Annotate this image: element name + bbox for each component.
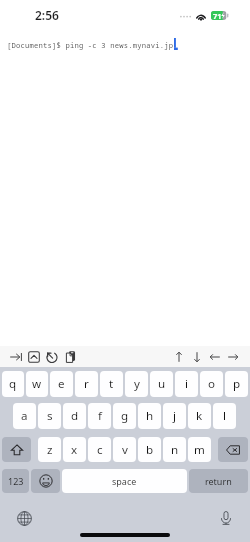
staticText: return: [205, 475, 232, 487]
button[interactable]: f: [88, 403, 111, 429]
staticText: d: [71, 408, 79, 424]
staticText: z: [47, 442, 53, 458]
button[interactable]: r: [75, 371, 98, 397]
staticText: 123: [8, 475, 24, 487]
button[interactable]: Backspace: [218, 437, 248, 462]
staticText: i: [185, 376, 188, 392]
button[interactable]: s: [38, 403, 61, 429]
staticText: h: [146, 408, 154, 424]
button[interactable]: Arrow right: [224, 347, 242, 367]
staticText: e: [58, 376, 65, 392]
button[interactable]: e: [50, 371, 73, 397]
button[interactable]: Tab: [7, 347, 25, 367]
staticText: 71: [213, 11, 222, 20]
staticText: r: [84, 376, 89, 392]
button[interactable]: d: [63, 403, 86, 429]
staticText: 2:56: [35, 7, 59, 23]
button[interactable]: b: [138, 437, 161, 462]
staticText: b: [146, 442, 154, 458]
button[interactable]: y: [125, 371, 148, 397]
button[interactable]: n: [163, 437, 186, 462]
staticText: v: [122, 442, 128, 458]
staticText: u: [158, 376, 166, 392]
button[interactable]: p: [225, 371, 248, 397]
button[interactable]: Emoji: [31, 469, 60, 493]
button[interactable]: Control: [25, 347, 43, 367]
button[interactable]: i: [175, 371, 198, 397]
button[interactable]: l: [213, 403, 236, 429]
button[interactable]: Dictation: [216, 510, 236, 526]
button[interactable]: g: [113, 403, 136, 429]
button[interactable]: q: [2, 371, 24, 397]
button[interactable]: o: [200, 371, 223, 397]
button[interactable]: Change keyboard: [14, 510, 34, 526]
button[interactable]: z: [38, 437, 61, 462]
button[interactable]: return: [189, 469, 248, 493]
staticText: g: [121, 408, 129, 424]
button[interactable]: space: [62, 469, 187, 493]
staticText: c: [97, 442, 103, 458]
staticText: y: [134, 376, 140, 392]
staticText: x: [71, 442, 78, 458]
staticText: t: [109, 376, 114, 392]
button[interactable]: x: [63, 437, 86, 462]
staticText: l: [223, 408, 226, 424]
staticText: q: [9, 376, 17, 392]
staticText: p: [233, 376, 241, 392]
staticText: s: [47, 408, 53, 424]
button[interactable]: m: [188, 437, 211, 462]
staticText: o: [208, 376, 216, 392]
staticText: k: [196, 408, 203, 424]
button[interactable]: t: [100, 371, 123, 397]
button[interactable]: k: [188, 403, 211, 429]
button[interactable]: u: [150, 371, 173, 397]
button[interactable]: 123: [2, 469, 29, 493]
staticText: w: [32, 376, 42, 392]
button[interactable]: Arrow left: [206, 347, 224, 367]
button[interactable]: Paste: [61, 347, 79, 367]
staticText: a: [21, 408, 28, 424]
button[interactable]: Arrow down: [188, 347, 206, 367]
staticText: space: [112, 475, 137, 487]
button[interactable]: Arrow up: [170, 347, 188, 367]
button[interactable]: c: [88, 437, 111, 462]
button[interactable]: w: [26, 371, 48, 397]
button[interactable]: j: [163, 403, 186, 429]
button[interactable]: v: [113, 437, 136, 462]
staticText: f: [98, 408, 102, 424]
button[interactable]: h: [138, 403, 161, 429]
staticText: j: [173, 408, 176, 424]
button[interactable]: Shift: [2, 437, 31, 462]
button[interactable]: a: [13, 403, 36, 429]
staticText: n: [171, 442, 179, 458]
button[interactable]: History: [43, 347, 61, 367]
staticText: m: [194, 442, 205, 458]
staticText: [Documents]$ ping -c 3 news.mynavi.jp: [7, 40, 174, 50]
